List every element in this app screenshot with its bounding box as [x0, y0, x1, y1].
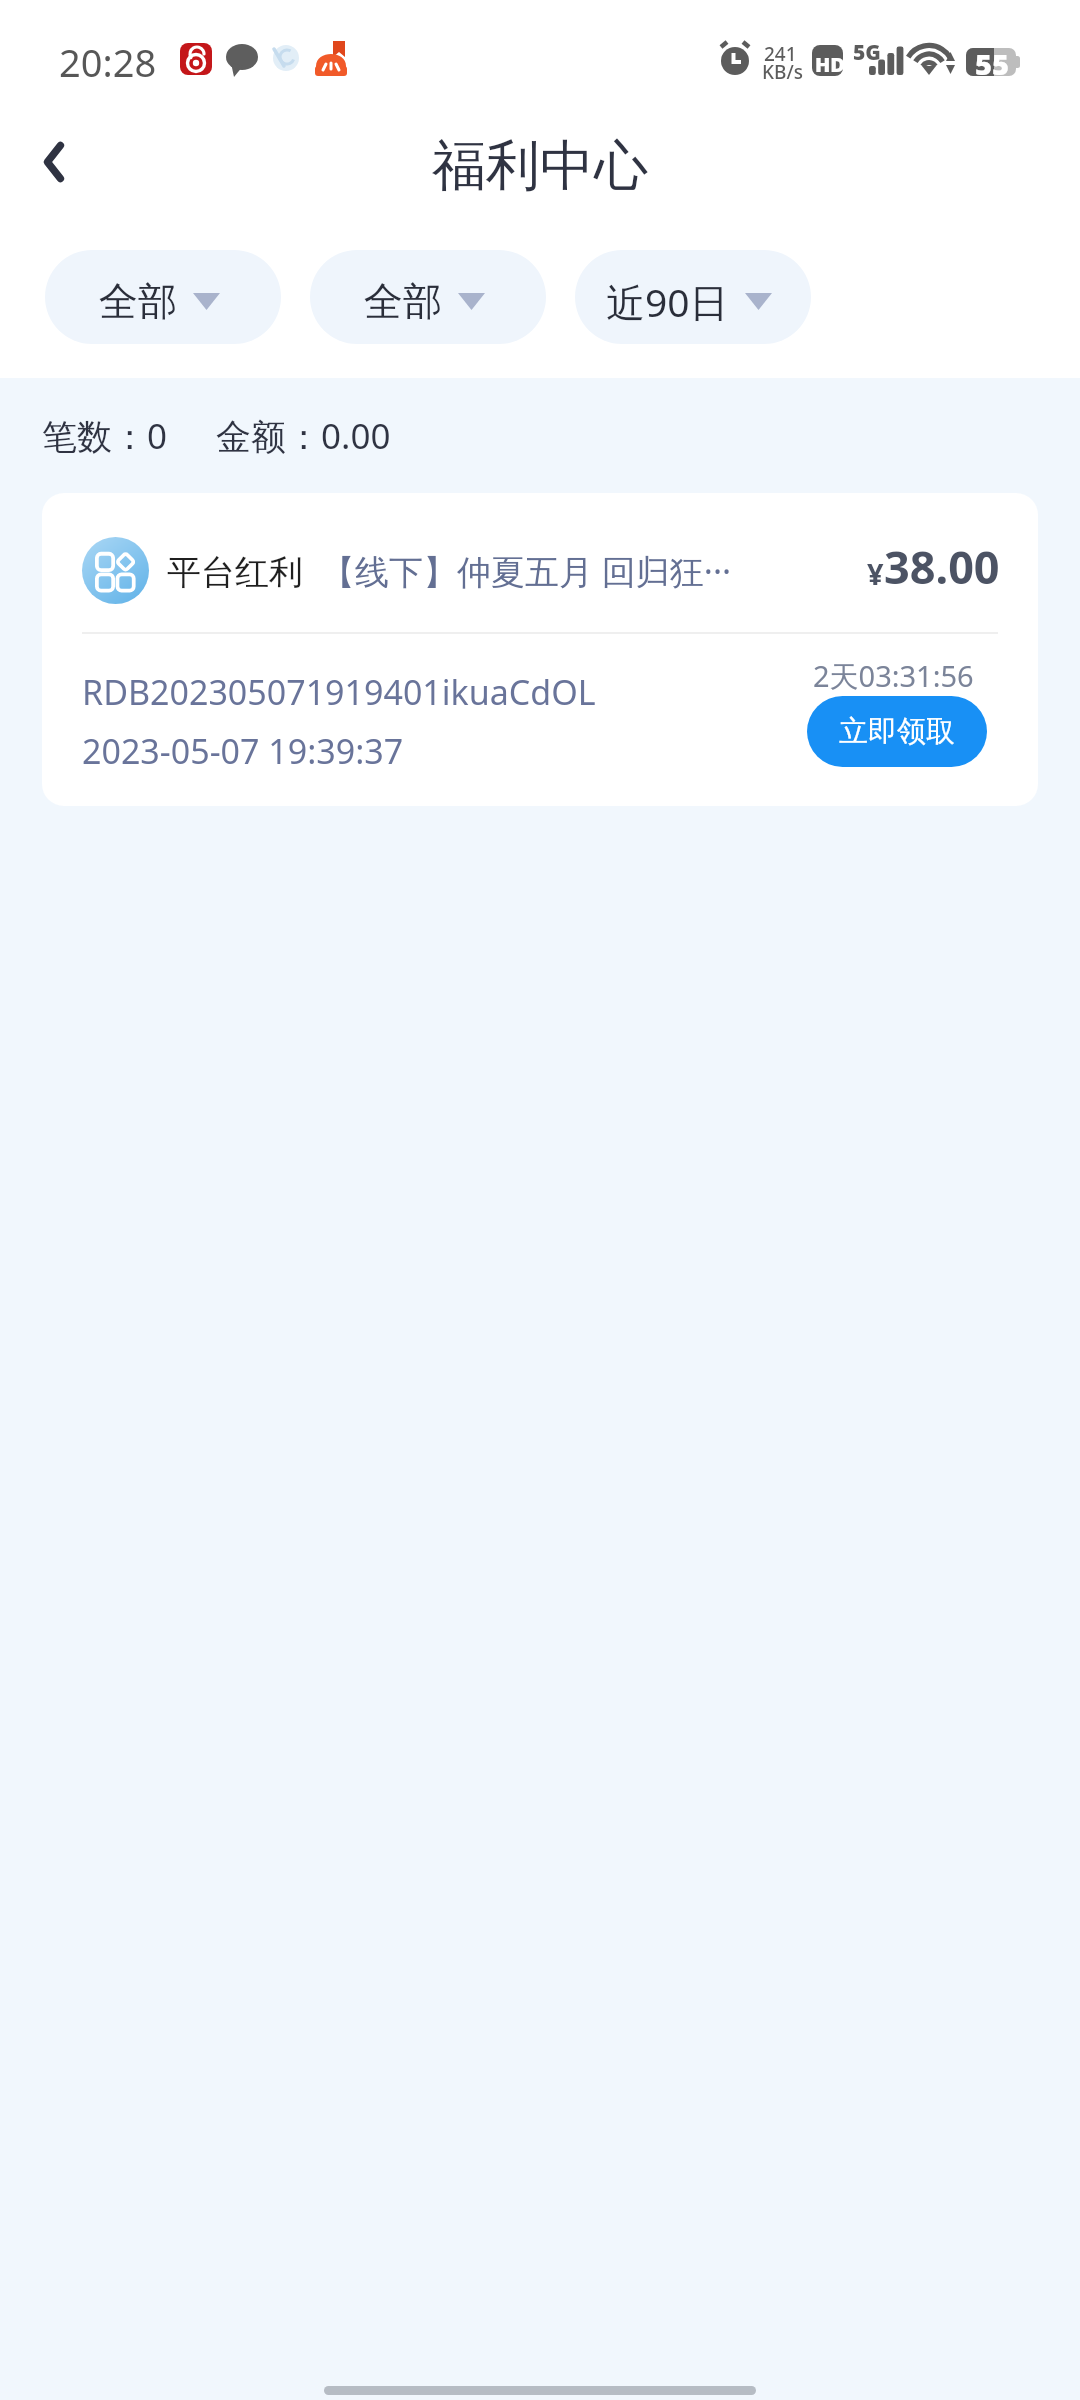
staticText: 平台红利 — [167, 548, 321, 594]
staticText: 5G — [853, 38, 881, 67]
staticText: RDB202305071919401ikuaCdOL — [82, 669, 596, 715]
staticText: 全部 — [99, 277, 177, 326]
button[interactable]: Back — [6, 114, 102, 210]
staticText: 55 — [975, 44, 1009, 83]
staticText: 20:28 — [59, 36, 157, 88]
button[interactable]: 立即领取 — [807, 696, 987, 767]
staticText: 241 — [764, 41, 797, 67]
button[interactable]: 全部 — [310, 250, 546, 344]
staticText: 笔数：0 — [42, 412, 168, 460]
staticText: 2天03:31:56 — [813, 656, 974, 696]
staticText: 金额：0.00 — [216, 412, 391, 460]
staticText: 38.00 — [884, 536, 1000, 597]
staticText: 近90日 — [606, 275, 729, 328]
staticText: 福利中心 — [432, 132, 648, 200]
staticText: 立即领取 — [839, 713, 955, 750]
staticText: 2023-05-07 19:39:37 — [82, 728, 404, 774]
button[interactable]: 平台红利 — [42, 493, 1038, 806]
button[interactable]: 全部 — [45, 250, 281, 344]
staticText: KB/s — [762, 59, 803, 85]
button[interactable]: 近90日 — [575, 250, 811, 344]
staticText: HD — [815, 51, 845, 78]
staticText: ¥ — [867, 554, 884, 593]
staticText: 【线下】仲夏五月 回归狂··· — [321, 548, 732, 594]
staticText: 全部 — [364, 277, 442, 326]
